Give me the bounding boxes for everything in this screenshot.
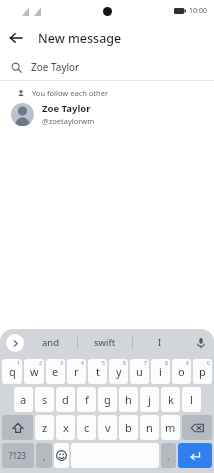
button[interactable]: Zoe Taylor	[0, 54, 214, 80]
staticText: Zoe Taylor	[31, 60, 80, 74]
button[interactable]: Backspace	[182, 415, 212, 440]
button[interactable]: g	[98, 387, 117, 412]
staticText: t	[96, 364, 100, 379]
staticText: 5	[102, 360, 105, 367]
button[interactable]: l	[182, 387, 201, 412]
staticText: ?123	[9, 450, 27, 461]
staticText: ,	[43, 450, 46, 462]
staticText: s	[42, 392, 48, 407]
button[interactable]: n	[140, 415, 159, 440]
staticText: e	[52, 364, 59, 379]
staticText: o	[178, 364, 185, 379]
staticText: q	[9, 364, 16, 379]
staticText: n	[146, 420, 153, 435]
staticText: l	[190, 392, 193, 407]
button[interactable]: Back	[0, 22, 32, 54]
button[interactable]: r	[67, 359, 86, 384]
button[interactable]: h	[119, 387, 138, 412]
button[interactable]: i	[151, 359, 170, 384]
button[interactable]: e	[46, 359, 65, 384]
button[interactable]: I	[133, 329, 187, 356]
staticText: 3	[60, 360, 63, 367]
staticText: You follow each other	[32, 88, 109, 98]
staticText: g	[104, 392, 111, 407]
staticText: c	[84, 420, 90, 435]
staticText: a	[20, 392, 27, 407]
button[interactable]: x	[56, 415, 75, 440]
button[interactable]: c	[77, 415, 96, 440]
button[interactable]: Voice input	[187, 329, 214, 356]
staticText: Zoe Taylor	[42, 102, 91, 115]
staticText: New message	[38, 30, 122, 47]
staticText: p	[199, 364, 206, 379]
staticText: m	[165, 420, 176, 435]
button[interactable]: ?123	[2, 443, 34, 468]
button[interactable]: f	[77, 387, 96, 412]
staticText: 10:00	[189, 6, 207, 16]
staticText: i	[159, 364, 162, 379]
button[interactable]: m	[161, 415, 180, 440]
staticText: h	[125, 392, 132, 407]
staticText: b	[125, 420, 132, 435]
button[interactable]: v	[98, 415, 117, 440]
button[interactable]: p	[193, 359, 212, 384]
button[interactable]: d	[56, 387, 75, 412]
staticText: u	[136, 364, 143, 379]
button[interactable]: a	[14, 387, 33, 412]
staticText: v	[105, 420, 111, 435]
staticText: f	[85, 392, 89, 407]
button[interactable]: o	[172, 359, 191, 384]
button[interactable]: Enter	[178, 443, 212, 468]
button[interactable]: .	[161, 443, 176, 468]
staticText: and	[42, 336, 60, 349]
staticText: swift	[94, 336, 116, 349]
button[interactable]: q	[2, 359, 22, 384]
staticText: 0	[207, 360, 210, 367]
staticText: d	[62, 392, 69, 407]
button[interactable]: z	[35, 415, 54, 440]
button[interactable]: b	[119, 415, 138, 440]
button[interactable]: Emoji	[54, 443, 69, 468]
staticText: 1	[17, 360, 20, 367]
staticText: w	[30, 364, 39, 379]
button[interactable]: Expand toolbar	[6, 334, 24, 352]
staticText: 9	[186, 360, 189, 367]
button[interactable]: t	[88, 359, 107, 384]
staticText: 8	[165, 360, 168, 367]
staticText: 4	[81, 360, 84, 367]
staticText: j	[148, 392, 151, 407]
staticText: r	[74, 364, 79, 379]
button[interactable]: y	[109, 359, 128, 384]
button[interactable]: Zoe Taylor	[0, 99, 214, 129]
staticText: x	[63, 420, 69, 435]
staticText: @zoetaylorwm	[42, 116, 95, 126]
staticText: .	[167, 450, 170, 462]
button[interactable]: k	[161, 387, 180, 412]
button[interactable]: w	[24, 359, 44, 384]
button[interactable]: u	[130, 359, 149, 384]
button[interactable]: s	[35, 387, 54, 412]
staticText: k	[168, 392, 174, 407]
button[interactable]: Shift	[2, 415, 33, 440]
staticText: 7	[144, 360, 147, 367]
button[interactable]: j	[140, 387, 159, 412]
staticText: 6	[123, 360, 126, 367]
staticText: y	[116, 364, 122, 379]
staticText: z	[42, 420, 48, 435]
button[interactable]: ,	[36, 443, 52, 468]
staticText: I	[158, 336, 162, 349]
staticText: 2	[39, 360, 42, 367]
button[interactable]: swift	[78, 329, 132, 356]
button[interactable]: and	[24, 329, 77, 356]
